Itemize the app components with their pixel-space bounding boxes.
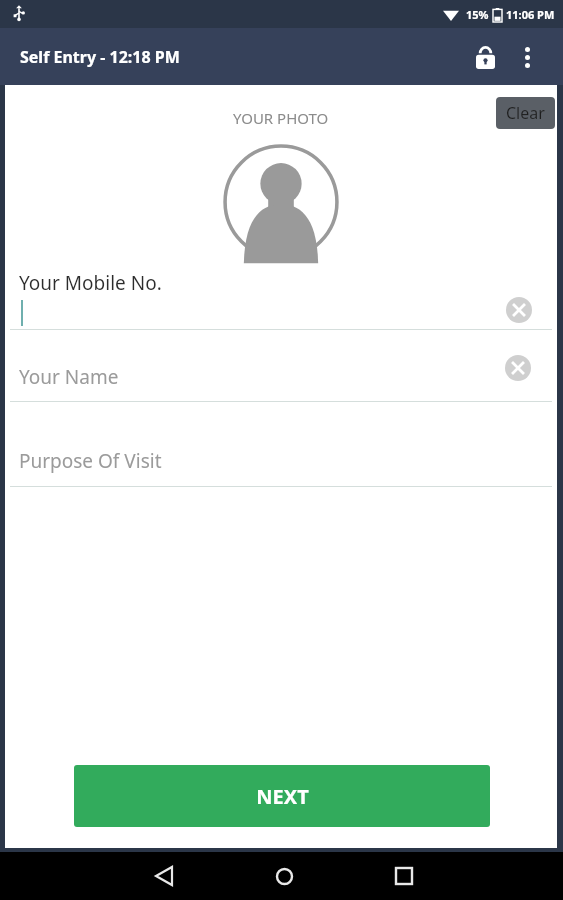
staticText: Self Entry - 12:18 PM (20, 46, 180, 68)
button[interactable]: Clear text (503, 294, 535, 326)
button[interactable]: Home (260, 852, 308, 900)
button[interactable]: NEXT (74, 765, 490, 827)
staticText: 15% (466, 7, 489, 22)
staticText: NEXT (256, 783, 309, 810)
button[interactable]: Lock (463, 35, 507, 79)
button[interactable]: Your Mobile No. (5, 267, 557, 330)
button[interactable]: Recent apps (380, 852, 428, 900)
staticText: YOUR PHOTO (233, 108, 329, 128)
staticText: Clear (506, 102, 545, 124)
staticText: Your Mobile No. (19, 270, 162, 296)
staticText: Your Name (19, 364, 119, 390)
button[interactable]: Clear (496, 97, 555, 129)
button[interactable]: More options (507, 37, 547, 77)
staticText: Purpose Of Visit (19, 448, 162, 474)
button[interactable]: Back (140, 852, 188, 900)
button[interactable]: Your Name (5, 339, 557, 402)
button[interactable]: Purpose Of Visit (5, 424, 557, 487)
button[interactable]: Clear text (502, 352, 534, 384)
button[interactable]: Your photo (222, 143, 340, 261)
staticText: 11:06 PM (506, 7, 555, 22)
